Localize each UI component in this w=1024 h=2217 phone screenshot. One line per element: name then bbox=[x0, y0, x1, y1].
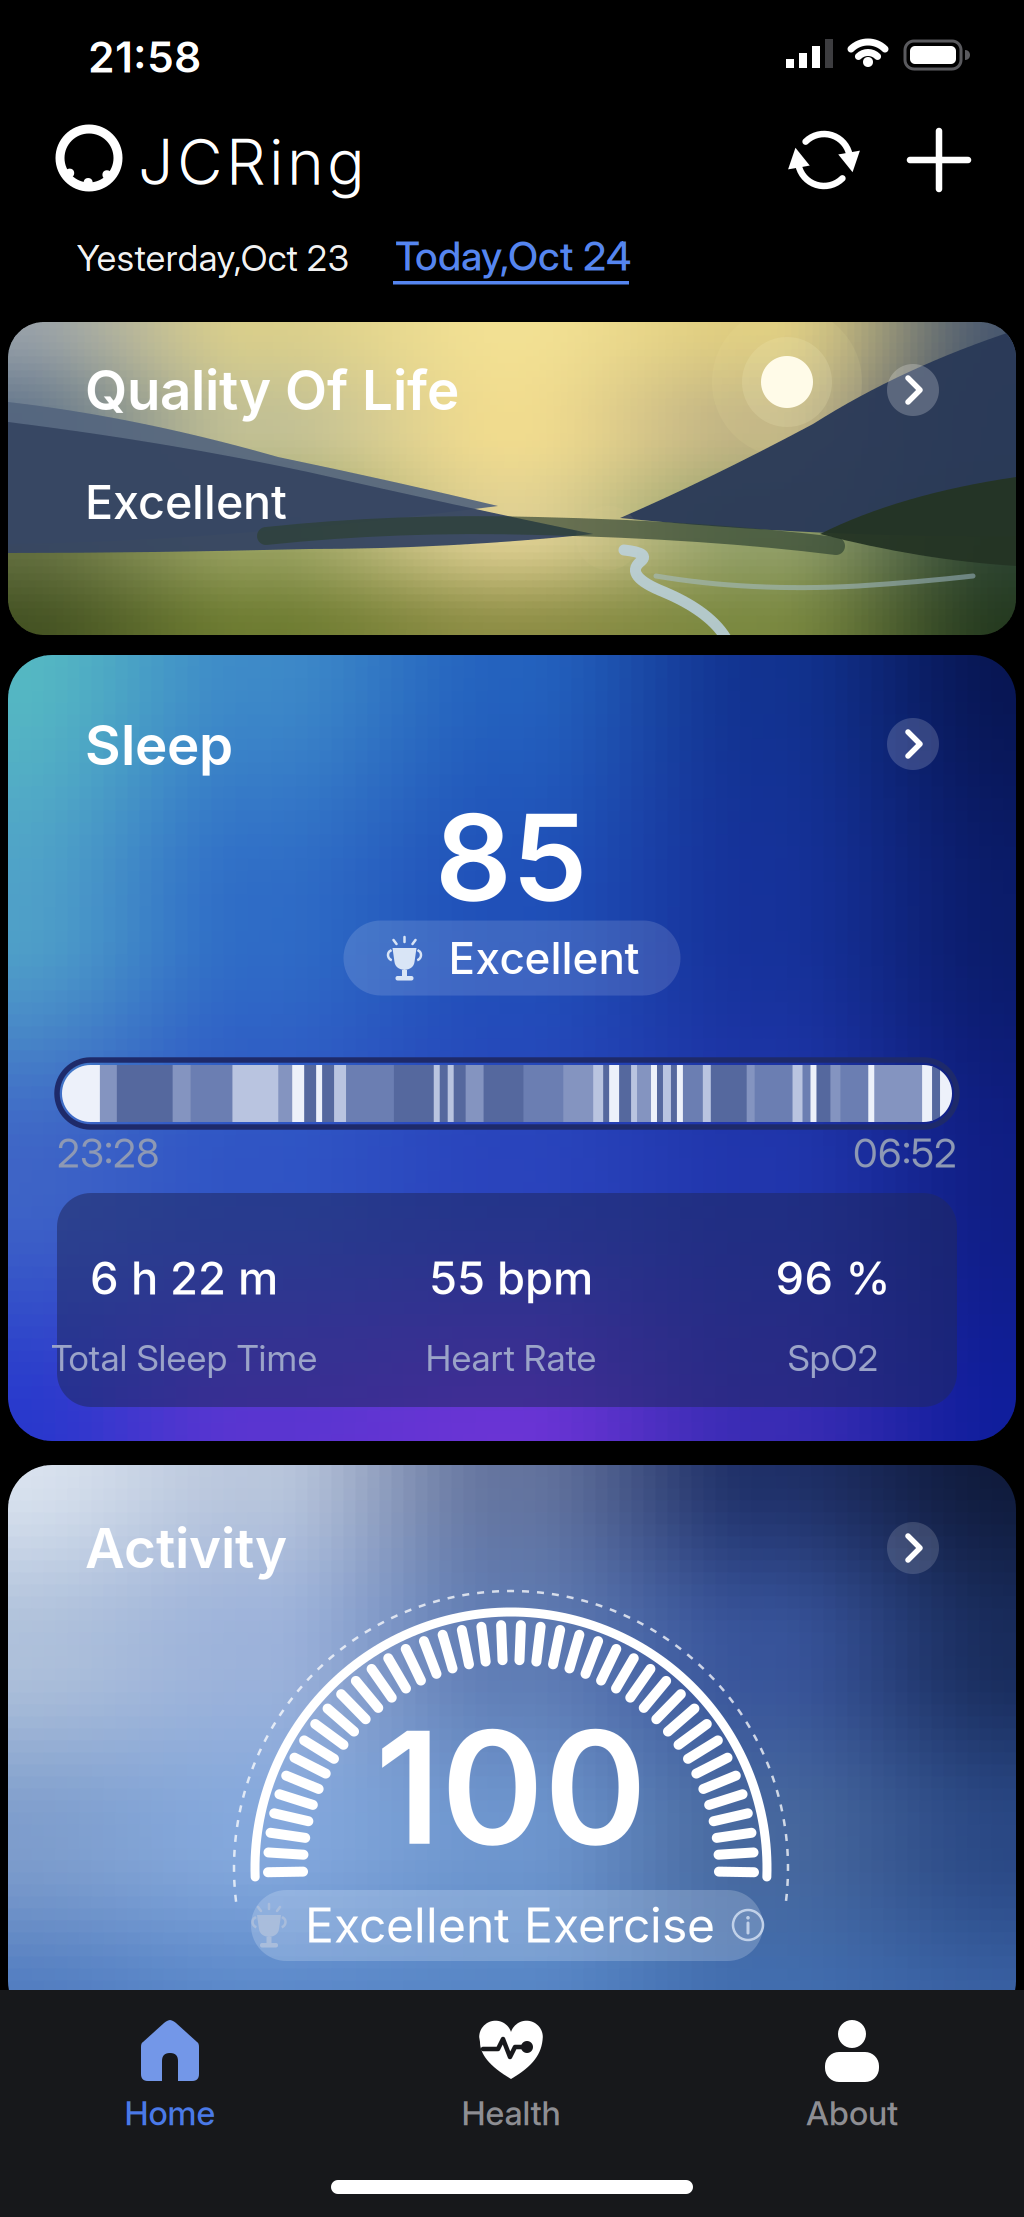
staticText: About bbox=[806, 2093, 898, 2133]
button[interactable]: Quality Of Life bbox=[8, 322, 1016, 635]
button[interactable]: Sleep bbox=[8, 655, 1016, 1441]
staticText: JCRing bbox=[138, 125, 365, 199]
staticText: Heart Rate bbox=[425, 1337, 596, 1379]
staticText: Today,Oct 24 bbox=[395, 232, 631, 280]
button[interactable]: About bbox=[727, 1990, 977, 2150]
staticText: Quality Of Life bbox=[85, 358, 459, 422]
staticText: Health bbox=[461, 2093, 560, 2133]
staticText: 21:58 bbox=[88, 32, 201, 82]
staticText: Sleep bbox=[85, 713, 233, 777]
button[interactable]: Sync bbox=[0, 0, 1024, 2217]
staticText: Excellent Exercise bbox=[305, 1897, 715, 1953]
button[interactable]: Activity score info bbox=[731, 1908, 765, 1942]
staticText: Excellent bbox=[85, 474, 287, 530]
staticText: 6 h 22 m bbox=[90, 1251, 278, 1305]
staticText: 06:52 bbox=[853, 1129, 957, 1177]
button[interactable]: Activity bbox=[8, 1465, 1016, 2025]
staticText: Yesterday,Oct 23 bbox=[76, 237, 349, 279]
button[interactable]: Add device bbox=[0, 0, 1024, 2217]
staticText: 23:28 bbox=[57, 1129, 159, 1177]
staticText: 55 bpm bbox=[429, 1251, 593, 1305]
button[interactable]: Today,Oct 24 bbox=[393, 236, 633, 284]
button[interactable]: Health bbox=[386, 1990, 636, 2150]
button[interactable]: Home bbox=[45, 1990, 295, 2150]
staticText: Total Sleep Time bbox=[50, 1337, 317, 1379]
staticText: Excellent bbox=[448, 932, 639, 984]
staticText: 100 bbox=[375, 1695, 647, 1879]
button[interactable]: Yesterday,Oct 23 bbox=[76, 237, 349, 279]
staticText: SpO2 bbox=[787, 1337, 878, 1379]
staticText: Home bbox=[124, 2093, 215, 2133]
staticText: 85 bbox=[435, 786, 587, 928]
staticText: 96 % bbox=[775, 1251, 890, 1305]
staticText: Activity bbox=[85, 1516, 287, 1580]
